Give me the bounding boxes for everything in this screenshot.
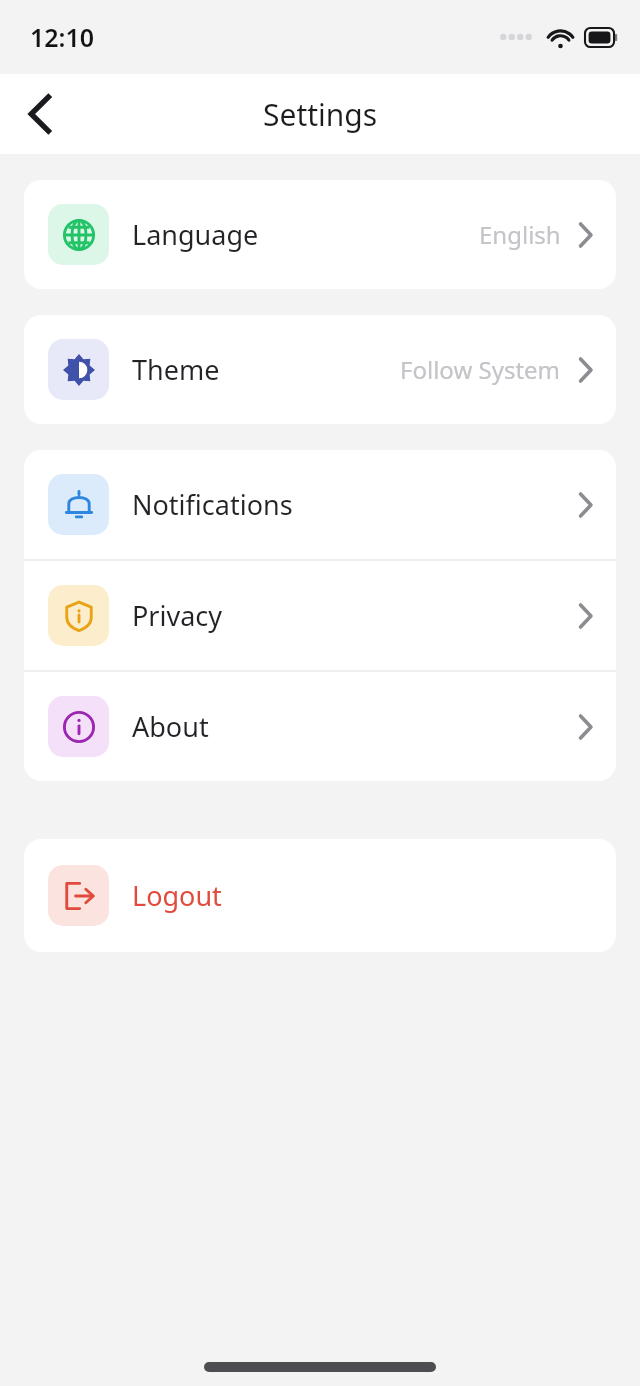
- button[interactable]: Theme: [24, 315, 616, 424]
- staticText: Settings: [263, 94, 378, 135]
- staticText: About: [132, 708, 209, 745]
- staticText: Language: [132, 216, 259, 253]
- button[interactable]: About: [24, 672, 616, 781]
- staticText: Theme: [132, 351, 220, 388]
- staticText: Notifications: [132, 486, 293, 523]
- button[interactable]: Back: [12, 86, 68, 142]
- staticText: Logout: [132, 877, 222, 914]
- staticText: Privacy: [132, 597, 223, 634]
- button[interactable]: Logout: [24, 839, 616, 952]
- button[interactable]: Language: [24, 180, 616, 289]
- button[interactable]: Privacy: [24, 561, 616, 670]
- button[interactable]: Notifications: [24, 450, 616, 559]
- staticText: 12:10: [30, 20, 95, 54]
- staticText: Follow System: [400, 353, 561, 386]
- staticText: English: [479, 218, 561, 251]
